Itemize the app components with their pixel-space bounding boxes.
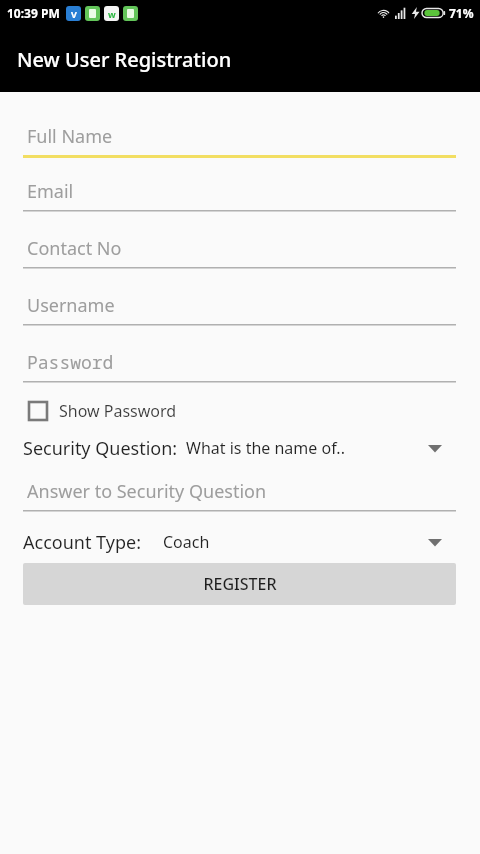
button[interactable]: REGISTER bbox=[23, 563, 456, 605]
staticText: Full Name bbox=[27, 124, 113, 149]
button[interactable]: Password bbox=[23, 344, 456, 384]
staticText: Account Type: bbox=[23, 530, 141, 555]
staticText: w bbox=[108, 8, 116, 20]
staticText: Contact No bbox=[27, 236, 122, 261]
staticText: 10:39 PM bbox=[7, 5, 60, 21]
button[interactable]: Full Name bbox=[23, 118, 456, 158]
staticText: New User Registration bbox=[17, 46, 232, 73]
staticText: 71% bbox=[449, 5, 474, 21]
staticText: Coach bbox=[163, 531, 210, 553]
staticText: What is the name of.. bbox=[186, 437, 345, 459]
staticText: Username bbox=[27, 293, 115, 318]
button[interactable]: Username bbox=[23, 287, 456, 327]
staticText: Password bbox=[27, 350, 114, 375]
button[interactable]: Email bbox=[23, 173, 456, 213]
button[interactable]: Answer to Security Question bbox=[23, 473, 456, 513]
staticText: Email bbox=[27, 179, 74, 204]
staticText: Security Question: bbox=[23, 436, 178, 461]
button[interactable]: Contact No bbox=[23, 230, 456, 270]
staticText: V bbox=[71, 8, 77, 20]
button[interactable]: Show Password bbox=[23, 397, 456, 425]
staticText: Show Password bbox=[59, 400, 177, 422]
button[interactable]: Coach bbox=[163, 531, 456, 553]
staticText: REGISTER bbox=[203, 573, 277, 595]
button[interactable]: What is the name of.. bbox=[186, 437, 456, 459]
staticText: Answer to Security Question bbox=[27, 479, 267, 504]
